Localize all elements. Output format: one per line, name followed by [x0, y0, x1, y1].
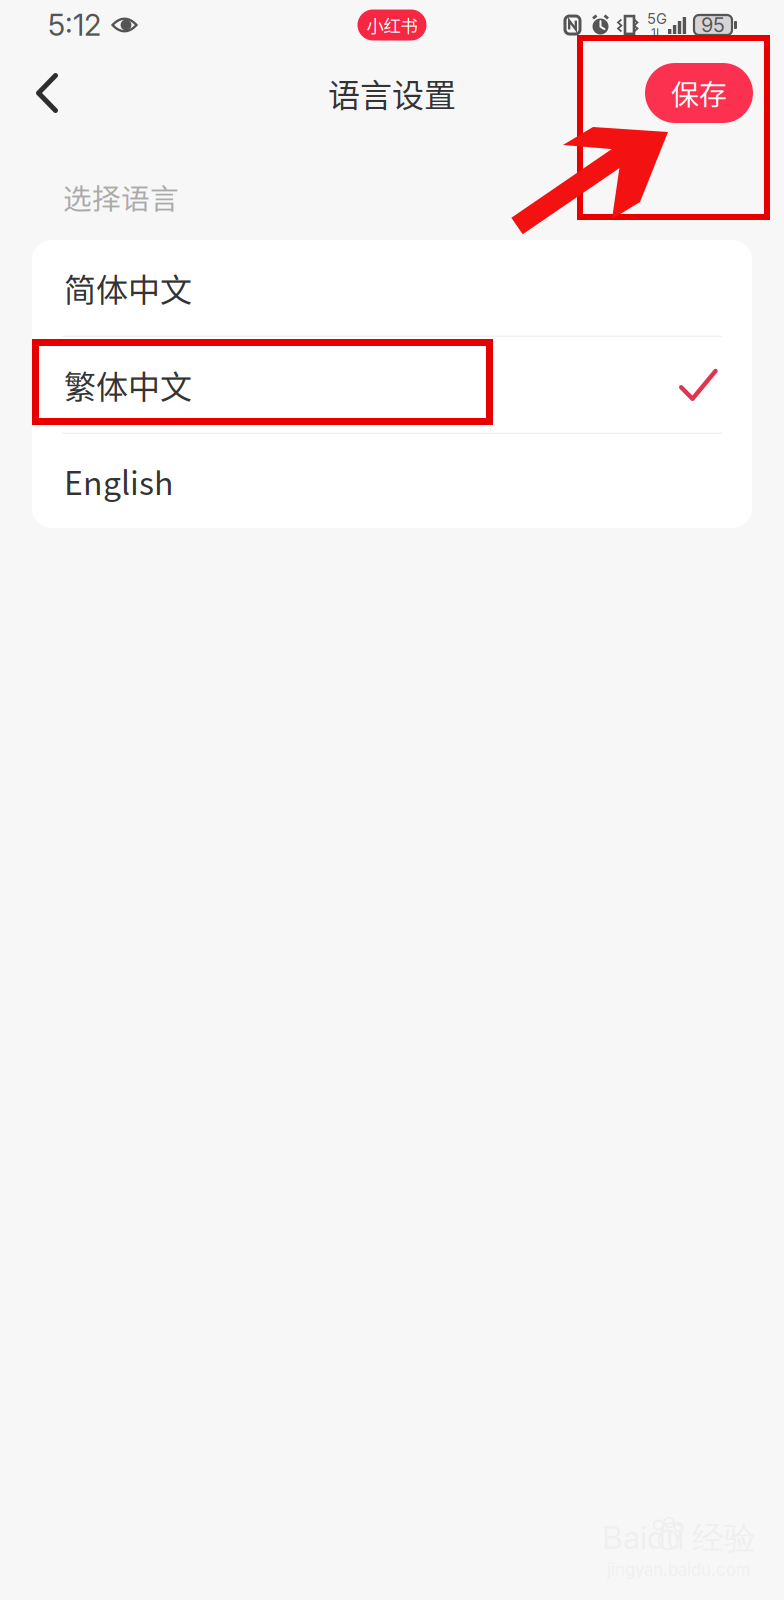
button[interactable]: 繁体中文: [32, 337, 752, 434]
staticText: 语言设置: [328, 70, 456, 116]
staticText: Baidu 经验: [602, 1518, 756, 1558]
staticText: 小红书: [366, 12, 417, 38]
button[interactable]: 简体中文: [32, 240, 752, 337]
staticText: 保存: [671, 73, 727, 113]
staticText: 5:12: [48, 7, 101, 43]
staticText: 5G: [647, 10, 667, 28]
button[interactable]: English: [32, 434, 752, 528]
staticText: 1L: [651, 26, 663, 40]
staticText: 繁体中文: [64, 362, 192, 408]
staticText: 95: [701, 13, 725, 37]
staticText: 选择语言: [63, 176, 179, 218]
button[interactable]: 保存: [645, 50, 784, 136]
staticText: 简体中文: [64, 265, 192, 311]
staticText: English: [64, 458, 173, 504]
button[interactable]: Back: [0, 50, 80, 136]
